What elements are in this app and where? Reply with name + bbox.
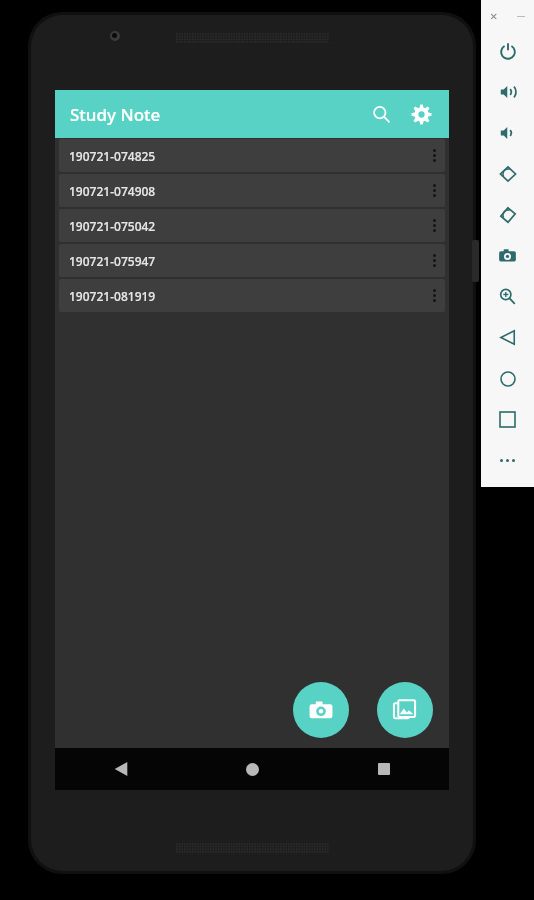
staticText: 190721-074825	[69, 148, 156, 164]
button[interactable]: Emulator control	[481, 399, 534, 440]
button[interactable]: Emulator control	[481, 235, 534, 276]
button[interactable]: 190721-081919	[59, 279, 445, 312]
button[interactable]: Open gallery	[377, 682, 433, 738]
button[interactable]: Take photo	[293, 682, 349, 738]
button[interactable]: Emulator control	[481, 153, 534, 194]
button[interactable]: Emulator control	[481, 317, 534, 358]
button[interactable]: Recents	[318, 748, 449, 790]
button[interactable]: 190721-074825	[59, 139, 445, 172]
button[interactable]: Back	[55, 748, 187, 790]
button[interactable]: Settings	[401, 94, 441, 134]
staticText: 190721-081919	[69, 288, 156, 304]
staticText: 190721-075042	[69, 218, 156, 234]
button[interactable]: Emulator control	[481, 276, 534, 317]
button[interactable]: 190721-074908	[59, 174, 445, 207]
staticText: 190721-075947	[69, 253, 156, 269]
button[interactable]: Emulator control	[481, 112, 534, 153]
button[interactable]: Search	[361, 94, 401, 134]
button[interactable]: Emulator control	[481, 358, 534, 399]
button[interactable]: 190721-075042	[59, 209, 445, 242]
staticText: ×	[490, 7, 498, 25]
button[interactable]: 190721-075947	[59, 244, 445, 277]
button[interactable]: Home	[187, 748, 318, 790]
button[interactable]: Emulator control	[481, 440, 534, 481]
staticText: Study Note	[70, 103, 161, 126]
button[interactable]: Emulator control	[481, 30, 534, 71]
button[interactable]: Emulator control	[481, 71, 534, 112]
button[interactable]: Emulator control	[481, 194, 534, 235]
staticText: 190721-074908	[69, 183, 156, 199]
